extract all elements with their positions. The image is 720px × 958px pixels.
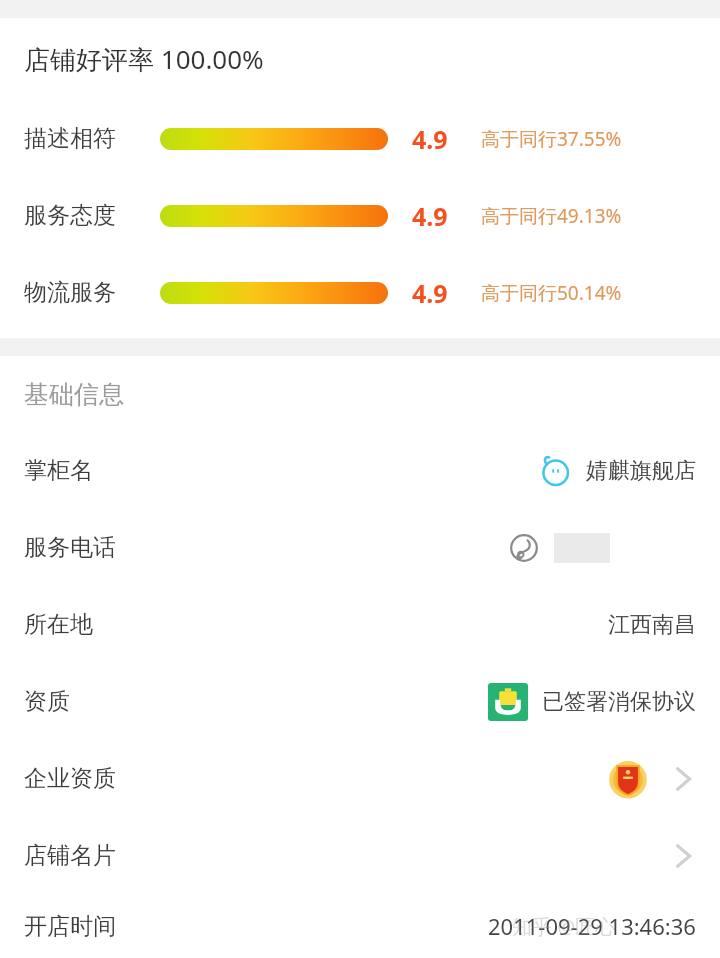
staticText: 描述相符	[24, 124, 116, 153]
button[interactable]: 描述相符	[0, 100, 720, 177]
staticText: 基础信息	[24, 379, 124, 410]
staticText: 开店时间	[24, 912, 116, 941]
other: Open 企业资质	[674, 762, 694, 796]
staticText: 婧麒旗舰店	[586, 457, 696, 485]
staticText: 4.9	[412, 276, 448, 310]
button[interactable]: 资质	[0, 663, 720, 740]
staticText: 江西南昌	[608, 611, 696, 639]
staticText: 企业资质	[24, 764, 116, 793]
staticText: 物流服务	[24, 278, 116, 307]
button[interactable]: 所在地	[0, 586, 720, 663]
staticText: 所在地	[24, 610, 93, 639]
staticText: 4.9	[412, 199, 448, 233]
staticText: 2011-09-29 13:46:36	[488, 911, 696, 941]
staticText: 资质	[24, 687, 70, 716]
button[interactable]: 店铺名片	[0, 817, 720, 894]
staticText: 知乎 @匠心	[512, 913, 616, 940]
other: Open 店铺名片	[674, 839, 694, 873]
button[interactable]: 服务电话	[0, 509, 720, 586]
button[interactable]: 物流服务	[0, 254, 720, 331]
button[interactable]: 服务态度	[0, 177, 720, 254]
button[interactable]: 掌柜名	[0, 432, 720, 509]
staticText: 高于同行37.55%	[481, 126, 622, 152]
staticText: 4.9	[412, 122, 448, 156]
button[interactable]: 开店时间	[0, 894, 720, 958]
staticText: 高于同行49.13%	[481, 203, 622, 229]
staticText: 服务电话	[24, 533, 116, 562]
staticText: 店铺好评率 100.00%	[24, 41, 264, 77]
staticText: 掌柜名	[24, 456, 93, 485]
staticText: 店铺名片	[24, 841, 116, 870]
staticText: 服务态度	[24, 201, 116, 230]
button[interactable]: 企业资质	[0, 740, 720, 817]
staticText: 已签署消保协议	[542, 688, 696, 716]
staticText: 高于同行50.14%	[481, 280, 622, 306]
